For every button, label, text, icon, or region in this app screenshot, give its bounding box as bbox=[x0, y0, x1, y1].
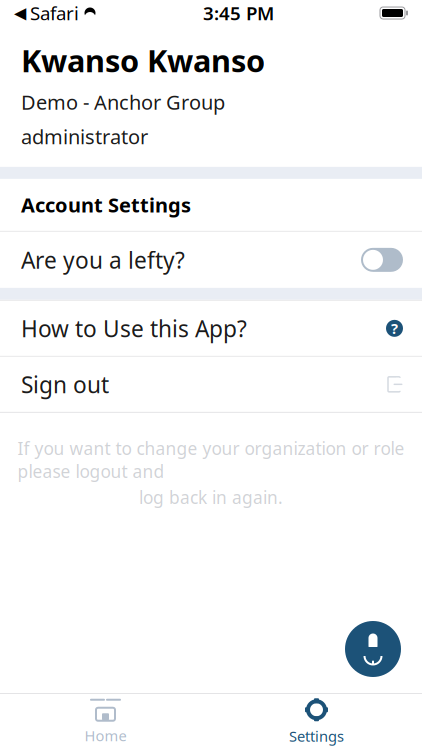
button[interactable]: Settings bbox=[211, 690, 422, 750]
staticText: Kwanso Kwanso bbox=[21, 40, 265, 81]
button[interactable]: How to Use this App? bbox=[0, 301, 422, 356]
staticText: Sign out bbox=[21, 369, 109, 399]
button[interactable]: Sign out bbox=[0, 357, 422, 412]
staticText: administrator bbox=[21, 123, 148, 150]
button[interactable]: Are you a lefty? bbox=[0, 232, 422, 288]
staticText: Safari bbox=[30, 1, 79, 25]
button[interactable]: Voice input bbox=[345, 621, 401, 677]
staticText: Settings bbox=[289, 726, 344, 746]
staticText: How to Use this App? bbox=[21, 313, 247, 343]
staticText: Demo - Anchor Group bbox=[21, 89, 225, 115]
staticText: ? bbox=[391, 319, 398, 338]
button[interactable]: Home bbox=[0, 691, 211, 750]
staticText: log back in again. bbox=[139, 486, 283, 509]
staticText: Are you a lefty? bbox=[21, 245, 185, 275]
staticText: 3:45 PM bbox=[203, 1, 274, 25]
staticText: Home bbox=[84, 726, 126, 745]
staticText: ◀ bbox=[14, 4, 26, 22]
staticText: If you want to change your organization … bbox=[17, 437, 404, 483]
staticText: Account Settings bbox=[21, 192, 191, 218]
